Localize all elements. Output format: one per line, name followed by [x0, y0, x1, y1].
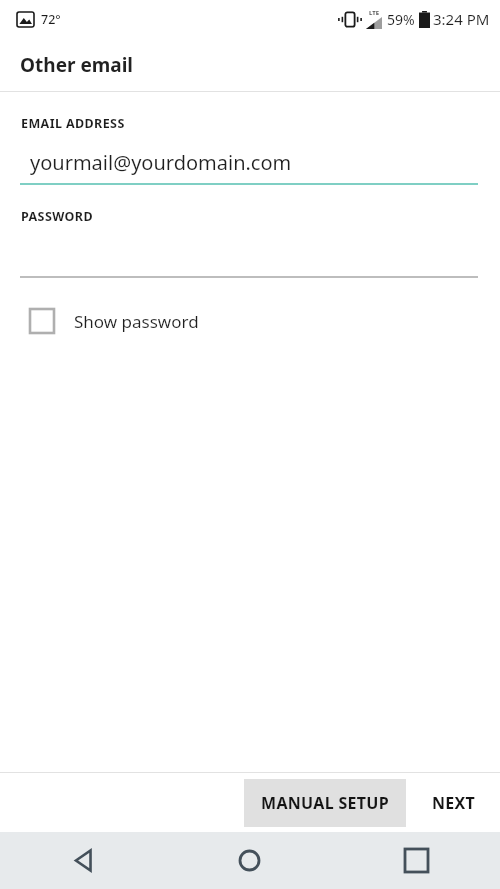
button[interactable]: Show password — [22, 301, 199, 341]
button[interactable]: Back — [0, 832, 166, 889]
staticText: EMAIL ADDRESS — [21, 115, 125, 132]
staticText: MANUAL SETUP — [261, 792, 389, 814]
staticText: LTE — [369, 9, 380, 17]
button[interactable]: MANUAL SETUP — [244, 779, 406, 827]
staticText: NEXT — [432, 792, 476, 814]
button[interactable]: NEXT — [406, 779, 500, 827]
button[interactable]: Recent apps — [333, 832, 500, 889]
staticText: PASSWORD — [21, 208, 93, 225]
staticText: 3:24 PM — [433, 9, 490, 29]
button[interactable]: Home — [166, 832, 333, 889]
button[interactable]: yourmail@yourdomain.com — [20, 149, 478, 185]
staticText: Show password — [74, 310, 199, 333]
staticText: Other email — [20, 52, 133, 78]
staticText: yourmail@yourdomain.com — [30, 149, 292, 176]
staticText: 72° — [41, 11, 61, 28]
staticText: 59% — [387, 10, 415, 29]
